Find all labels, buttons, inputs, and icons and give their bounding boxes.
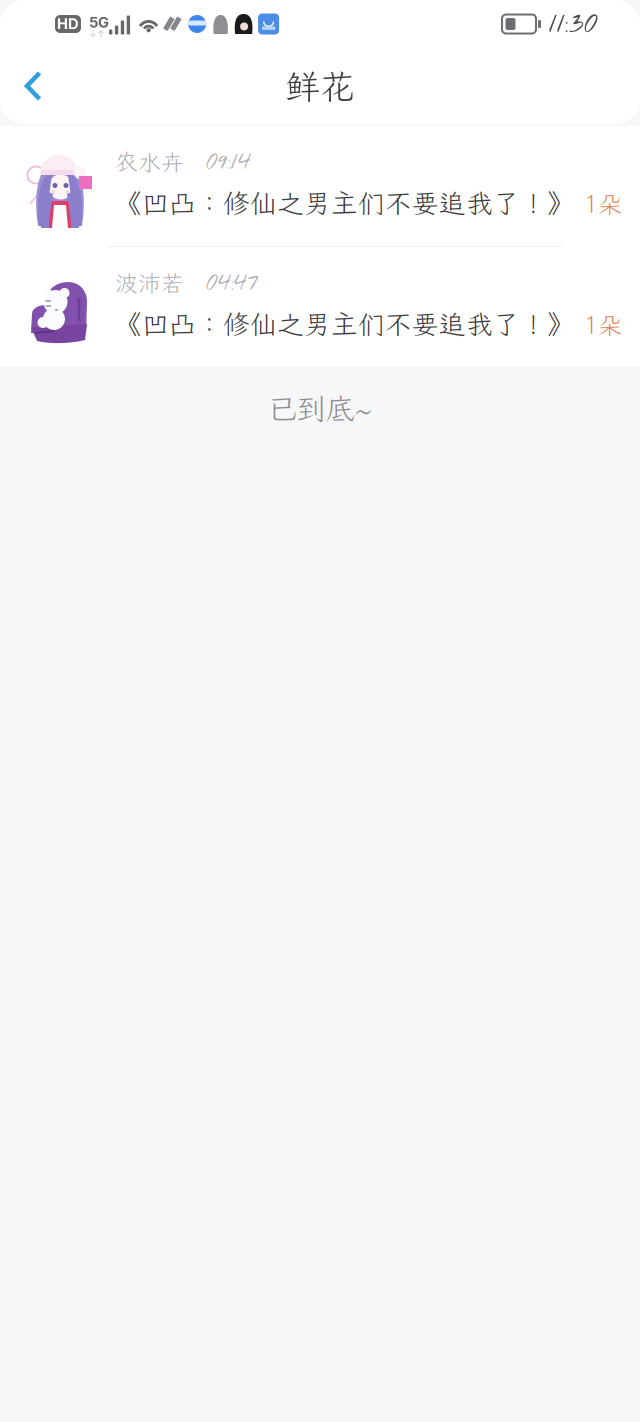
staticText: 09:14 (206, 145, 251, 179)
staticText: 04:47 (206, 266, 259, 300)
staticText: 鲜花 (285, 63, 355, 109)
staticText: HD (57, 15, 79, 33)
staticText: ↓↑ (89, 28, 105, 39)
staticText: 已到底~ (267, 389, 372, 428)
staticText: 波沛若 (115, 268, 184, 298)
button[interactable]: 波沛若 (0, 247, 640, 367)
staticText: 1朵 (584, 188, 622, 220)
staticText: 11:30 (549, 4, 598, 43)
staticText: 《凹凸：修仙之男主们不要追我了！》 (115, 306, 574, 341)
button[interactable]: Back (0, 48, 69, 124)
staticText: 农水卉 (115, 147, 184, 177)
staticText: 1朵 (584, 309, 622, 341)
button[interactable]: 农水卉 (0, 126, 640, 246)
staticText: 《凹凸：修仙之男主们不要追我了！》 (115, 185, 574, 220)
staticText: 5G (89, 13, 109, 31)
